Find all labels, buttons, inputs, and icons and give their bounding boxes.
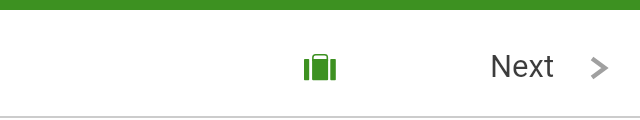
staticText: Next	[490, 48, 555, 84]
button[interactable]: Next	[477, 36, 624, 94]
button[interactable]: Baggage	[292, 38, 348, 96]
